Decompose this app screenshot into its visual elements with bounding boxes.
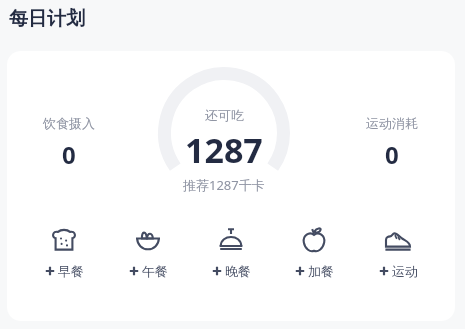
- staticText: 运动消耗: [366, 115, 418, 131]
- staticText: 午餐: [142, 263, 168, 279]
- button[interactable]: 添加午餐: [112, 223, 184, 281]
- other: 添加运动: [383, 225, 413, 255]
- staticText: 运动: [392, 263, 418, 279]
- staticText: 晚餐: [225, 263, 251, 279]
- other: 添加晚餐: [216, 225, 246, 255]
- other: 添加早餐: [49, 225, 79, 255]
- staticText: 还可吃: [205, 107, 244, 123]
- other: 添加加餐: [299, 225, 329, 255]
- other: 添加午餐: [133, 225, 163, 255]
- staticText: 1287: [185, 127, 263, 173]
- button[interactable]: 添加晚餐: [195, 223, 267, 281]
- staticText: 饮食摄入: [43, 115, 95, 131]
- button[interactable]: 添加运动: [362, 223, 434, 281]
- staticText: 0: [385, 138, 399, 171]
- staticText: 0: [62, 138, 76, 171]
- button[interactable]: 添加早餐: [28, 223, 100, 281]
- staticText: 加餐: [308, 263, 334, 279]
- button[interactable]: 添加加餐: [278, 223, 350, 281]
- staticText: 早餐: [58, 263, 84, 279]
- staticText: 每日计划: [9, 7, 85, 31]
- staticText: 推荐1287千卡: [183, 176, 265, 194]
